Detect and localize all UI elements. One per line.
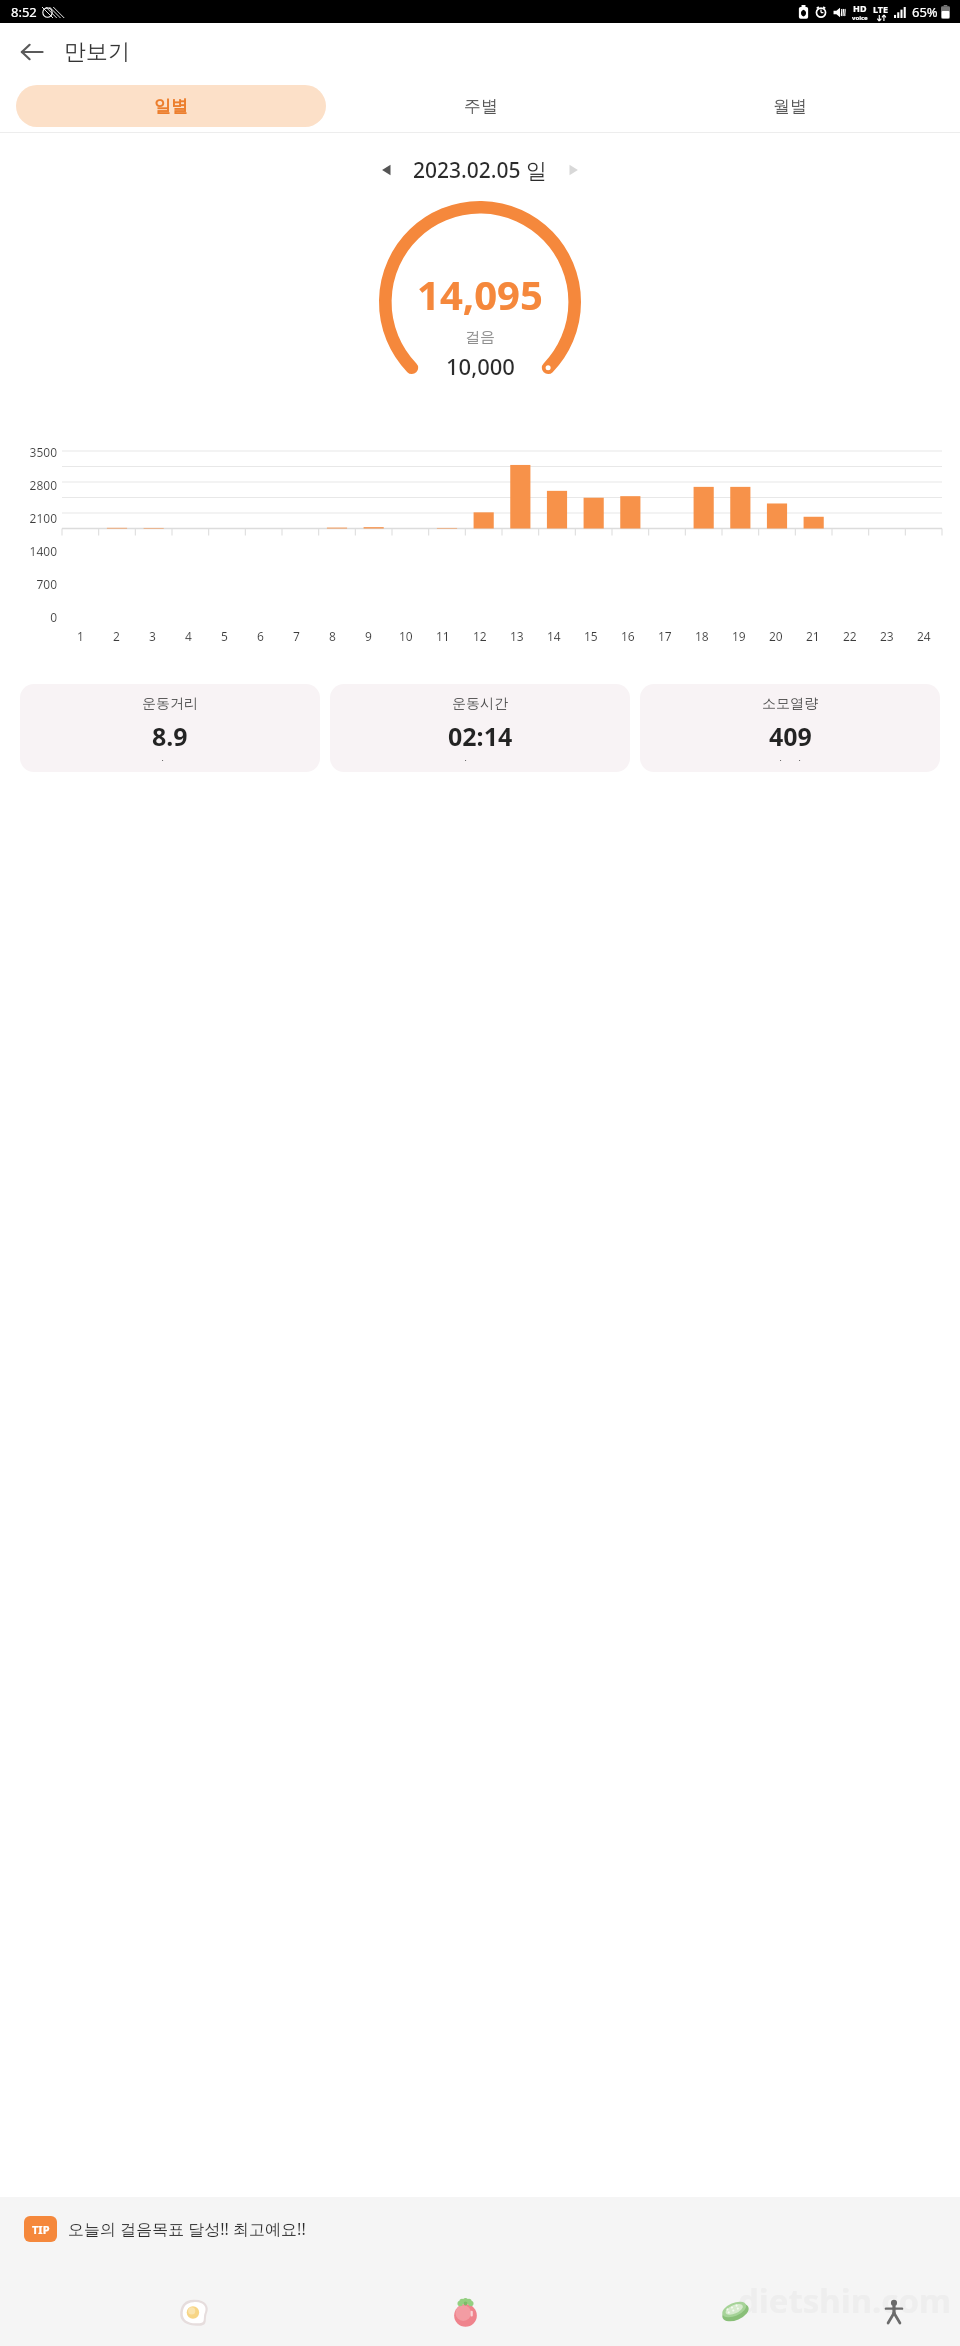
staticText: 7 [293, 628, 300, 644]
staticText: 월별 [773, 96, 807, 117]
button[interactable]: 운동시간 [330, 684, 630, 772]
staticText: 21 [806, 628, 820, 644]
staticText: 409 [769, 719, 812, 753]
staticText: voice [852, 14, 868, 22]
staticText: 1400 [29, 543, 57, 559]
staticText: 14 [547, 628, 561, 644]
staticText: TIP [32, 2222, 50, 2237]
button[interactable]: TIP [24, 2216, 57, 2242]
button[interactable]: Egg food log [171, 2289, 217, 2335]
staticText: 3 [149, 628, 156, 644]
staticText: 주별 [464, 96, 498, 117]
staticText: km [161, 757, 179, 761]
staticText: 15 [584, 628, 598, 644]
staticText: 0 [50, 609, 57, 625]
staticText: 17 [658, 628, 672, 644]
staticText: hours [464, 757, 497, 761]
staticText: dietshin.com [738, 2278, 952, 2323]
staticText: 2023.02.05 일 [413, 156, 547, 185]
staticText: 02:14 [448, 719, 513, 753]
staticText: 700 [36, 576, 57, 592]
staticText: 16 [621, 628, 635, 644]
button[interactable]: Exercise [875, 2293, 913, 2331]
staticText: 10 [399, 628, 413, 644]
button[interactable]: Next day [553, 150, 593, 190]
staticText: 2 [113, 628, 120, 644]
staticText: 오늘의 걸음목표 달성!! 최고예요!! [68, 2218, 306, 2240]
staticText: 4 [185, 628, 192, 644]
staticText: 65% [912, 3, 938, 21]
staticText: 10,000 [446, 351, 515, 381]
button[interactable]: Previous day [367, 150, 407, 190]
button[interactable]: 일별 [16, 85, 326, 127]
staticText: 9 [365, 628, 372, 644]
staticText: 2800 [29, 477, 57, 493]
staticText: 19 [732, 628, 746, 644]
staticText: 18 [695, 628, 709, 644]
staticText: HD [853, 2, 867, 14]
staticText: 5 [221, 628, 228, 644]
staticText: 20 [769, 628, 783, 644]
staticText: 8 [329, 628, 336, 644]
button[interactable]: 월별 [635, 85, 944, 127]
button[interactable]: Vegetable food log [712, 2289, 758, 2335]
staticText: 걸음 [465, 328, 495, 347]
staticText: 1 [77, 628, 84, 644]
staticText: LTE [873, 3, 889, 15]
staticText: 2100 [29, 510, 57, 526]
staticText: 12 [473, 628, 487, 644]
staticText: 3500 [29, 444, 57, 460]
staticText: 8:52 [11, 3, 37, 21]
staticText: 만보기 [64, 38, 130, 66]
button[interactable]: 운동거리 [20, 684, 320, 772]
staticText: 6 [257, 628, 264, 644]
button[interactable]: Back [9, 29, 55, 75]
button[interactable]: 주별 [326, 85, 635, 127]
staticText: 14,095 [417, 267, 543, 321]
staticText: kcal [779, 757, 801, 761]
staticText: 운동시간 [452, 695, 508, 713]
staticText: 소모열량 [762, 695, 818, 713]
staticText: 운동거리 [142, 695, 198, 713]
staticText: 일별 [154, 96, 188, 117]
staticText: 11 [436, 628, 450, 644]
staticText: 13 [510, 628, 524, 644]
staticText: 8.9 [152, 719, 188, 753]
button[interactable]: Fruit food log [442, 2289, 488, 2335]
staticText: 23 [880, 628, 894, 644]
staticText: 24 [917, 628, 931, 644]
button[interactable]: 소모열량 [640, 684, 940, 772]
staticText: 22 [843, 628, 857, 644]
